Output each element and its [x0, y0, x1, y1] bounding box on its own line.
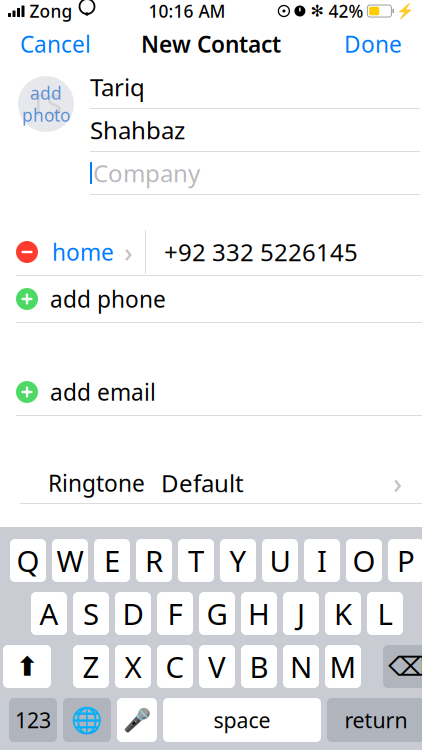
staticText: J — [297, 594, 305, 633]
staticText: › — [393, 464, 402, 502]
staticText: Y — [229, 541, 246, 580]
staticText: Default — [161, 467, 244, 499]
button[interactable]: U — [262, 539, 298, 582]
button[interactable]: F — [157, 592, 193, 635]
button[interactable]: M — [325, 645, 361, 688]
staticText: E — [104, 541, 120, 580]
staticText: U — [269, 541, 290, 580]
staticText: 🌐 — [71, 705, 103, 734]
button[interactable]: 123 — [9, 698, 57, 742]
button[interactable]: K — [325, 592, 361, 635]
staticText: TS — [30, 84, 62, 123]
button[interactable]: Next keyboard — [63, 698, 111, 742]
staticText: S — [83, 594, 99, 633]
button[interactable]: O — [346, 539, 382, 582]
staticText: 42% — [328, 0, 363, 22]
staticText: K — [334, 594, 352, 633]
button[interactable]: C — [157, 645, 193, 688]
staticText: Ringtone — [48, 468, 145, 498]
button[interactable]: Cancel — [6, 21, 105, 67]
staticText: 🎤 — [123, 707, 151, 733]
staticText: add — [30, 81, 62, 104]
staticText: New Contact — [141, 29, 281, 59]
button[interactable]: G — [199, 592, 235, 635]
staticText: M — [329, 647, 356, 686]
staticText: space — [213, 706, 270, 734]
button[interactable]: P — [388, 539, 422, 582]
staticText: ⚡ — [396, 3, 414, 19]
button[interactable]: V — [199, 645, 235, 688]
button[interactable]: T — [178, 539, 214, 582]
button[interactable]: L — [367, 592, 403, 635]
staticText: ✻ — [310, 2, 323, 20]
button[interactable]: Dictation — [117, 698, 157, 742]
staticText: C — [165, 647, 184, 686]
button[interactable]: N — [283, 645, 319, 688]
staticText: Cancel — [20, 29, 91, 59]
button[interactable]: I — [304, 539, 340, 582]
staticText: Q — [16, 541, 39, 580]
staticText: O — [352, 541, 375, 580]
button[interactable]: space — [163, 698, 321, 742]
staticText: T — [188, 541, 204, 580]
button[interactable]: X — [115, 645, 151, 688]
button[interactable]: E — [94, 539, 130, 582]
staticText: V — [208, 647, 226, 686]
staticText: add email — [50, 377, 156, 407]
button[interactable]: Y — [220, 539, 256, 582]
staticText: G — [206, 594, 227, 633]
staticText: photo — [22, 103, 70, 126]
button[interactable]: Z — [73, 645, 109, 688]
staticText: F — [167, 594, 182, 633]
staticText: N — [290, 647, 312, 686]
button[interactable]: Q — [10, 539, 46, 582]
button[interactable]: Ringtone — [0, 463, 422, 503]
staticText: Shahbaz — [90, 114, 185, 146]
button[interactable]: Add photo — [18, 76, 74, 132]
staticText: R — [145, 541, 163, 580]
button[interactable]: add email — [0, 369, 422, 415]
staticText: X — [124, 647, 141, 686]
button[interactable]: A — [31, 592, 67, 635]
staticText: › — [124, 234, 133, 270]
staticText: home — [52, 237, 114, 267]
staticText: 10:16 AM — [148, 0, 225, 22]
staticText: return — [344, 706, 407, 734]
staticText: B — [249, 647, 268, 686]
button[interactable]: Delete — [383, 645, 422, 688]
staticText: ⬆ — [16, 651, 38, 682]
staticText: Tariq — [90, 71, 145, 103]
button[interactable]: B — [241, 645, 277, 688]
button[interactable]: Done — [330, 21, 416, 67]
button[interactable]: return — [327, 698, 422, 742]
button[interactable]: H — [241, 592, 277, 635]
button[interactable]: W — [52, 539, 88, 582]
staticText: add phone — [50, 284, 166, 314]
staticText: 123 — [15, 706, 51, 734]
staticText: Company — [93, 157, 200, 189]
button[interactable]: R — [136, 539, 172, 582]
staticText: Zong — [29, 0, 72, 22]
staticText: I — [317, 541, 327, 580]
staticText: P — [397, 541, 415, 580]
button[interactable]: J — [283, 592, 319, 635]
button[interactable]: add phone — [0, 276, 422, 322]
staticText: L — [377, 594, 392, 633]
staticText: +92 332 5226145 — [164, 236, 358, 268]
staticText: W — [56, 541, 83, 580]
button[interactable]: home — [0, 229, 422, 275]
button[interactable]: Shift — [3, 645, 51, 688]
staticText: Done — [344, 29, 402, 59]
button[interactable]: D — [115, 592, 151, 635]
staticText: Z — [82, 647, 99, 686]
staticText: D — [122, 594, 143, 633]
button[interactable]: S — [73, 592, 109, 635]
staticText: ⌫ — [388, 651, 422, 682]
staticText: H — [248, 594, 270, 633]
staticText: A — [39, 594, 58, 633]
